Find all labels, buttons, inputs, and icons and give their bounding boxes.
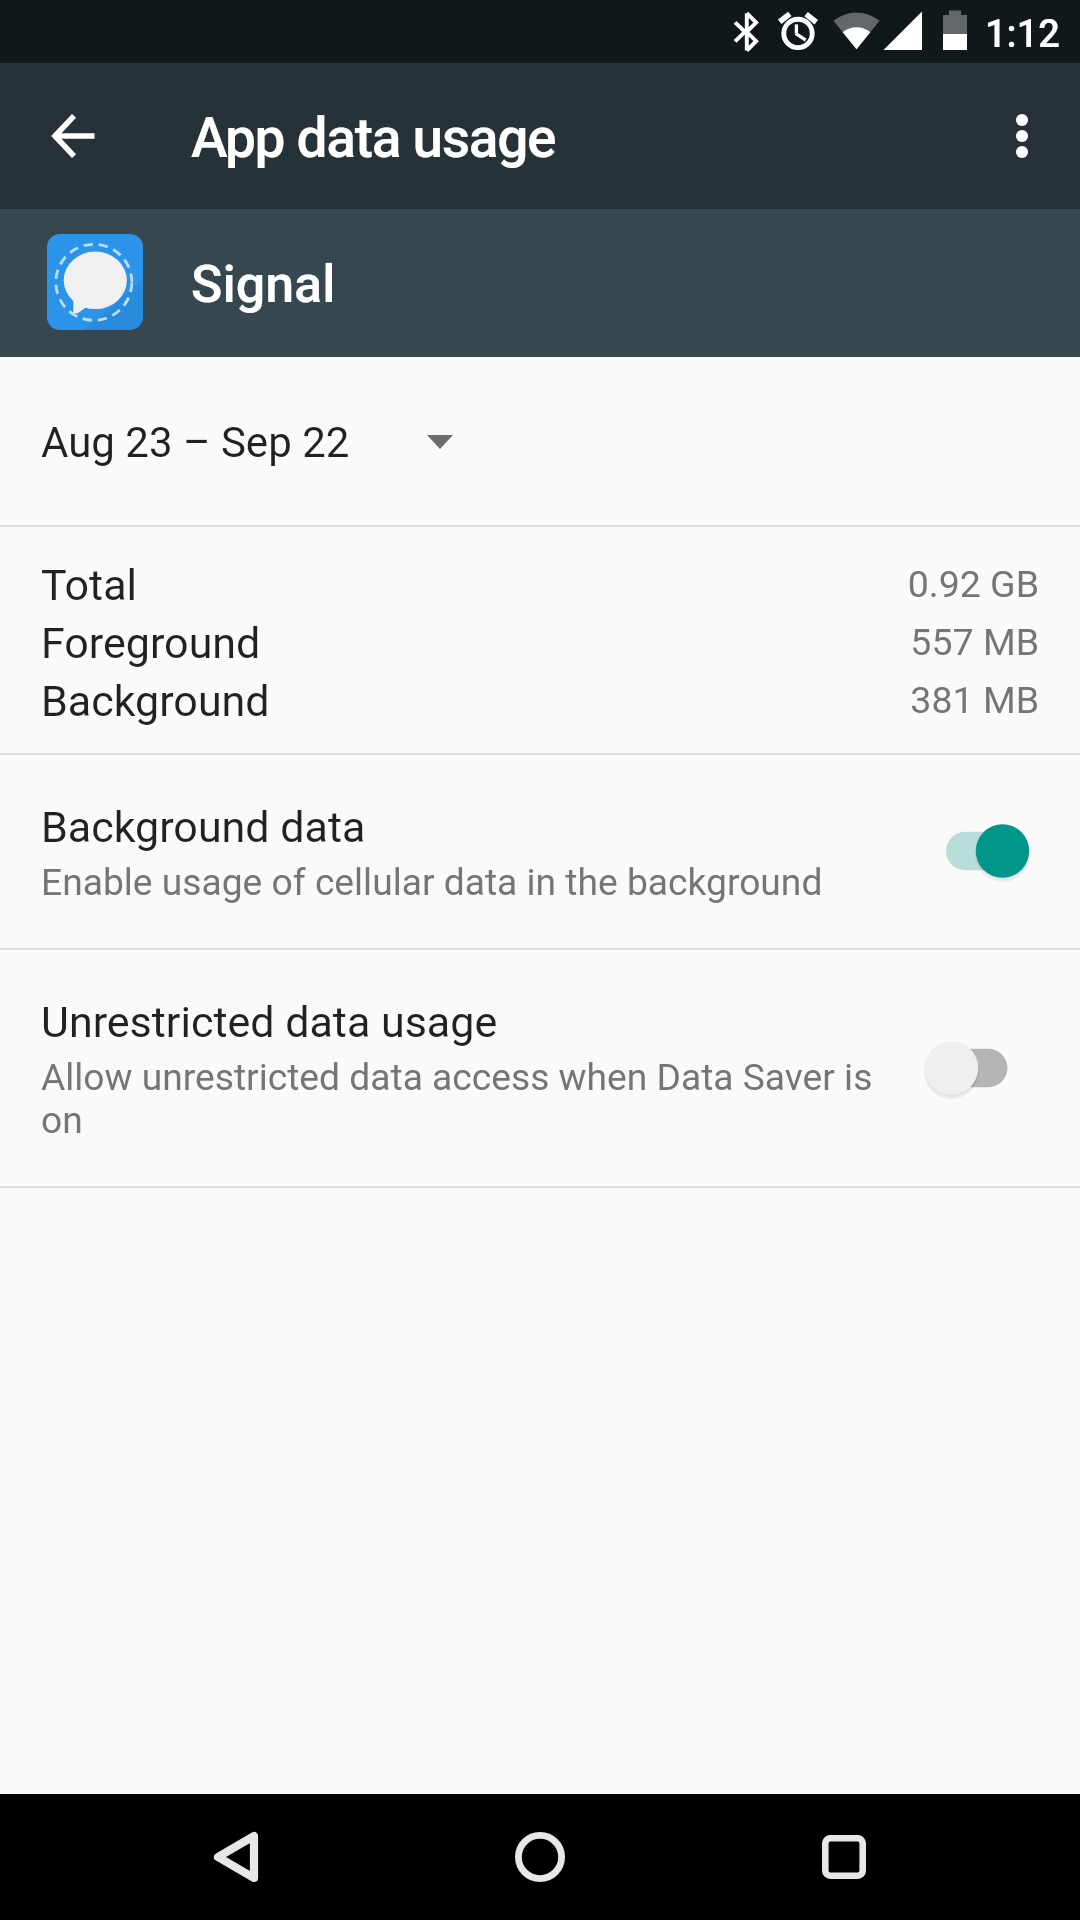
staticText: Foreground	[41, 618, 261, 668]
button[interactable]: Unrestricted data usage off	[920, 1038, 1040, 1098]
staticText: 1:12	[985, 12, 1060, 57]
staticText: Allow unrestricted data access when Data…	[41, 1056, 881, 1142]
staticText: 0.92 GB	[907, 562, 1039, 606]
staticText: App data usage	[191, 106, 556, 170]
button[interactable]: Back	[173, 1794, 301, 1920]
staticText: Total	[41, 560, 138, 610]
button[interactable]: Background data on	[920, 821, 1040, 881]
button[interactable]: Home	[476, 1794, 604, 1920]
staticText: Signal	[191, 254, 336, 315]
button[interactable]: Navigate up	[26, 88, 122, 184]
button[interactable]: Unrestricted data usage	[0, 950, 1080, 1186]
staticText: Aug 23 – Sep 22	[41, 418, 350, 467]
staticText: Unrestricted data usage	[41, 997, 498, 1047]
button[interactable]: Aug 23 – Sep 22	[0, 357, 1080, 525]
staticText: Enable usage of cellular data in the bac…	[41, 861, 823, 904]
staticText: 557 MB	[910, 620, 1039, 664]
button[interactable]: Background data	[0, 755, 1080, 948]
staticText: Background	[41, 676, 270, 726]
button[interactable]: Recent apps	[780, 1794, 908, 1920]
staticText: 381 MB	[910, 678, 1039, 722]
button[interactable]: More options	[974, 88, 1070, 184]
staticText: Background data	[41, 802, 366, 852]
